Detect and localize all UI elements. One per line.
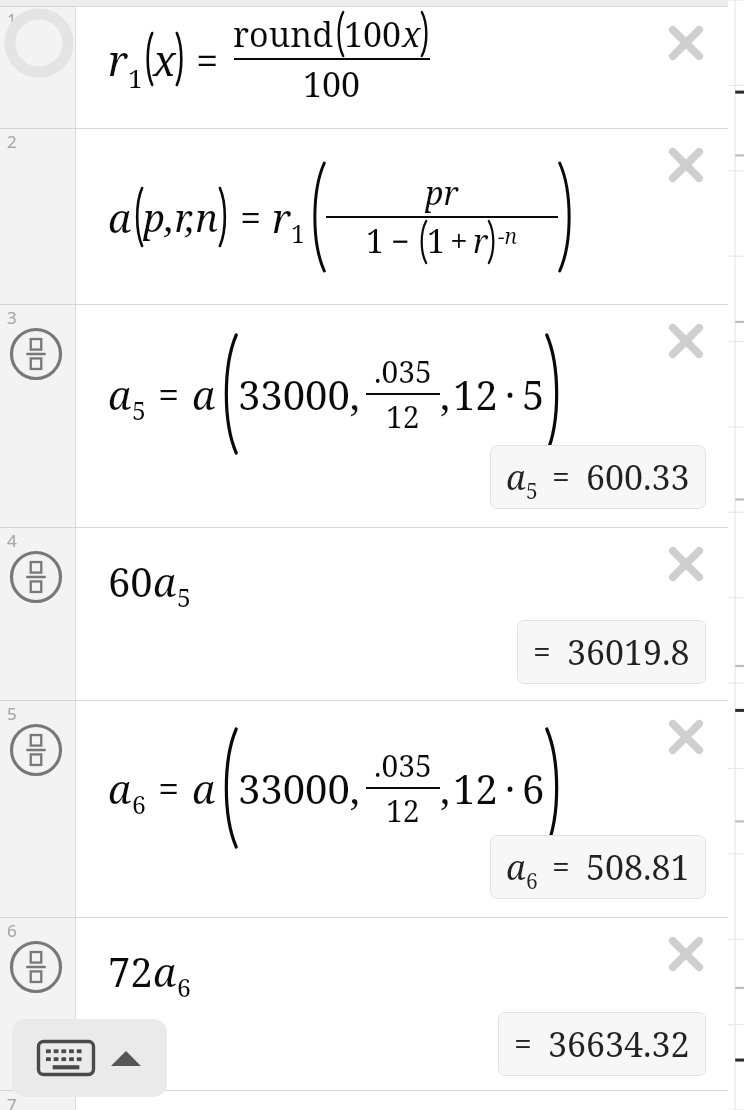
staticText: 5 [522, 367, 545, 421]
staticText: 33000, [238, 367, 360, 421]
staticText: = [552, 455, 570, 499]
staticText: 1 [7, 8, 17, 31]
staticText: a [108, 761, 132, 815]
staticText: r [108, 31, 128, 88]
staticText: 36019.8 [567, 629, 690, 675]
staticText: 6 [132, 787, 146, 821]
staticText: a [153, 944, 177, 998]
button[interactable]: Delete expression [664, 542, 708, 586]
staticText: round [233, 11, 334, 57]
staticText: .035 [374, 351, 432, 392]
staticText: r [272, 190, 291, 244]
staticText: 3 [7, 306, 17, 329]
staticText: 6 [177, 970, 191, 1004]
button[interactable]: Delete expression [664, 715, 708, 759]
staticText: = [514, 1022, 532, 1066]
staticText: = [196, 32, 219, 86]
staticText: 72 [108, 944, 153, 998]
staticText: a [153, 554, 177, 608]
staticText: 12 [453, 761, 498, 815]
staticText: 5 [132, 393, 146, 427]
button[interactable]: Expression options [9, 723, 63, 777]
staticText: = [158, 368, 180, 420]
staticText: , [440, 761, 450, 815]
staticText: 1 [128, 60, 143, 95]
button[interactable]: a [76, 129, 728, 304]
button[interactable]: 2 [0, 129, 76, 304]
button[interactable]: 72 [76, 918, 728, 1090]
staticText: 7 [7, 1093, 17, 1110]
staticText: a [506, 454, 526, 500]
staticText: 12 [386, 396, 420, 437]
staticText: r [473, 219, 488, 263]
staticText: 36634.32 [548, 1021, 690, 1067]
staticText: p,r,n [143, 191, 219, 243]
staticText: · [505, 367, 515, 421]
staticText: , [440, 367, 450, 421]
staticText: 1 [291, 216, 305, 250]
staticText: 508.81 [586, 844, 690, 890]
staticText: 6 [526, 866, 538, 895]
staticText: 5 [526, 476, 538, 505]
button[interactable]: 1 [0, 7, 76, 128]
staticText: − [391, 219, 410, 263]
staticText: a [192, 367, 216, 421]
staticText: 33000, [238, 761, 360, 815]
staticText: a [192, 761, 216, 815]
button[interactable]: Expression options [9, 550, 63, 604]
staticText: · [505, 761, 515, 815]
staticText: 100 [303, 61, 361, 107]
staticText: 6 [7, 919, 17, 942]
staticText: 60 [108, 554, 153, 608]
staticText: = [533, 630, 551, 674]
button[interactable]: 7 [0, 1091, 76, 1110]
button[interactable]: Expression options [9, 13, 69, 73]
staticText: 1 [427, 219, 445, 263]
button[interactable]: 6 [0, 918, 76, 1090]
staticText: 5 [7, 702, 17, 725]
staticText: 600.33 [586, 454, 690, 500]
staticText: 1 [366, 219, 384, 263]
button[interactable]: Toggle keyboard [12, 1019, 167, 1097]
button[interactable]: 5 [0, 701, 76, 917]
staticText: + [450, 219, 468, 263]
staticText: 5 [177, 580, 191, 614]
button[interactable]: 4 [0, 528, 76, 700]
staticText: 100 [344, 11, 402, 57]
button[interactable]: Delete expression [664, 319, 708, 363]
staticText: a [108, 190, 132, 244]
button[interactable]: Delete expression [664, 932, 708, 976]
staticText: a [506, 844, 526, 890]
button[interactable]: Expression options [9, 940, 63, 994]
staticText: 4 [7, 529, 17, 552]
button[interactable]: a [490, 835, 706, 899]
button[interactable]: 60 [76, 528, 728, 700]
staticText: 12 [386, 790, 420, 831]
staticText: .035 [374, 745, 432, 786]
staticText: x [153, 31, 176, 88]
button[interactable]: a [490, 445, 706, 509]
staticText: pr [425, 171, 459, 215]
staticText: = [240, 191, 262, 243]
button[interactable]: = [498, 1012, 706, 1076]
staticText: 2 [7, 130, 17, 153]
button[interactable]: Delete expression [664, 21, 708, 65]
button[interactable]: a [76, 701, 728, 917]
staticText: x [402, 11, 421, 57]
staticText: = [552, 845, 570, 889]
staticText: a [108, 367, 132, 421]
staticText: 6 [522, 761, 545, 815]
button[interactable]: 3 [0, 305, 76, 527]
staticText: −n [498, 222, 518, 251]
staticText: 12 [453, 367, 498, 421]
button[interactable]: = [517, 620, 706, 684]
staticText: = [158, 762, 180, 814]
button[interactable]: a [76, 305, 728, 527]
button[interactable]: Delete expression [664, 143, 708, 187]
button[interactable]: r [76, 7, 728, 128]
button[interactable]: Expression options [9, 327, 63, 381]
